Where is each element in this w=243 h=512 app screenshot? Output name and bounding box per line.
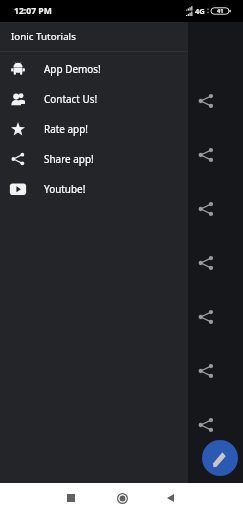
- button[interactable]: Compose: [202, 440, 238, 476]
- button[interactable]: Share app!: [0, 144, 188, 174]
- button[interactable]: [0, 128, 243, 182]
- button[interactable]: [0, 236, 243, 290]
- staticText: 41: [217, 7, 224, 15]
- staticText: Contact Us!: [44, 92, 98, 106]
- button[interactable]: [0, 182, 243, 236]
- button[interactable]: Home: [111, 487, 133, 509]
- button[interactable]: Back: [159, 487, 181, 509]
- staticText: 12:07 PM: [14, 5, 52, 17]
- staticText: Rate app!: [44, 122, 89, 136]
- staticText: Ionic Tutorials: [11, 30, 76, 43]
- button[interactable]: [0, 344, 243, 398]
- staticText: Youtube!: [44, 182, 86, 196]
- button[interactable]: App Demos!: [0, 54, 188, 84]
- button[interactable]: [0, 74, 243, 128]
- button[interactable]: [0, 290, 243, 344]
- staticText: 4G: [195, 6, 205, 16]
- staticText: App Demos!: [44, 62, 101, 76]
- button[interactable]: Recent apps: [60, 487, 82, 509]
- button[interactable]: [0, 398, 243, 452]
- staticText: Share app!: [44, 152, 94, 166]
- button[interactable]: Rate app!: [0, 114, 188, 144]
- button[interactable]: Youtube!: [0, 174, 188, 204]
- button[interactable]: Contact Us!: [0, 84, 188, 114]
